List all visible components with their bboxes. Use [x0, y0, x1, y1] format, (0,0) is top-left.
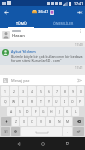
staticText: 0 — [80, 89, 82, 94]
staticText: 3 — [22, 89, 24, 94]
staticText: 1 — [4, 89, 6, 94]
button[interactable]: Q — [1, 97, 9, 106]
button[interactable]: Shift — [1, 117, 11, 126]
staticText: O — [71, 99, 74, 104]
button[interactable]: H — [48, 107, 55, 116]
staticText: Bizimle böyle bir çok kullanıcının bir b… — [11, 54, 83, 63]
staticText: H — [50, 109, 53, 114]
staticText: G — [42, 109, 45, 114]
staticText: K — [66, 109, 69, 114]
button[interactable]: 2 — [10, 86, 18, 96]
button[interactable]: Son uygulamalar — [61, 137, 74, 150]
staticText: 4 — [31, 89, 33, 94]
button[interactable]: Z — [12, 117, 19, 126]
staticText: E — [22, 99, 24, 104]
staticText: R — [31, 99, 34, 104]
button[interactable]: Enter — [73, 127, 84, 136]
staticText: Z — [15, 119, 17, 124]
button[interactable]: R — [28, 97, 36, 106]
staticText: ÖNEMLİLER — [53, 21, 74, 26]
button[interactable]: F — [32, 107, 39, 116]
staticText: V — [40, 119, 43, 124]
staticText: L — [75, 109, 77, 114]
button[interactable]: D — [24, 107, 31, 116]
button[interactable]: 4 — [28, 86, 36, 96]
staticText: A — [10, 109, 13, 114]
button[interactable]: M — [64, 117, 72, 126]
button[interactable]: Aykut Yıldırım — [0, 47, 85, 65]
button[interactable]: O — [69, 97, 76, 106]
staticText: T — [40, 99, 42, 104]
staticText: C — [31, 119, 34, 124]
button[interactable]: A — [7, 107, 15, 116]
button[interactable]: Boşluk — [21, 127, 62, 136]
staticText: 36:41 — [38, 9, 49, 15]
staticText: P — [79, 99, 82, 104]
staticText: X — [23, 119, 25, 124]
button[interactable]: Hasan — [0, 28, 85, 41]
staticText: Q — [4, 99, 7, 104]
button[interactable]: P — [77, 97, 84, 106]
staticText: U — [55, 99, 58, 104]
button[interactable]: C — [28, 117, 36, 126]
staticText: 5 — [40, 89, 42, 94]
button[interactable]: Gönder — [75, 76, 83, 84]
button[interactable]: X — [20, 117, 27, 126]
staticText: S — [19, 109, 21, 114]
button[interactable]: Daha fazla — [77, 28, 83, 34]
staticText: Y — [48, 99, 50, 104]
button[interactable]: Sil — [73, 117, 84, 126]
button[interactable]: Ana ekran — [36, 137, 49, 150]
button[interactable]: I — [61, 97, 68, 106]
button[interactable]: Ek — [2, 77, 9, 84]
button[interactable]: Geri — [0, 6, 12, 18]
button[interactable]: 3 — [19, 86, 27, 96]
button[interactable]: 5 — [37, 86, 44, 96]
button[interactable]: S — [16, 107, 23, 116]
button[interactable]: J — [56, 107, 63, 116]
button[interactable]: Mesaj yaz — [11, 75, 75, 85]
staticText: D — [26, 109, 29, 114]
button[interactable]: TÜMÜ — [0, 18, 42, 28]
staticText: 8 — [64, 89, 66, 94]
staticText: Hasan — [12, 33, 25, 39]
staticText: I — [64, 99, 66, 104]
button[interactable]: T — [37, 97, 44, 106]
button[interactable]: K — [64, 107, 71, 116]
staticText: N — [58, 119, 61, 124]
staticText: W — [12, 99, 16, 104]
staticText: 17:40 — [75, 43, 83, 47]
button[interactable]: 1 — [1, 86, 9, 96]
staticText: . — [67, 129, 68, 134]
button[interactable]: G — [40, 107, 47, 116]
staticText: !#1 — [4, 130, 8, 134]
button[interactable]: 9 — [69, 86, 76, 96]
button[interactable]: Geri — [12, 137, 25, 150]
staticText: Aykut Yıldırım — [11, 49, 36, 54]
staticText: TÜMÜ — [16, 21, 27, 26]
button[interactable]: ÖNEMLİLER — [42, 18, 85, 28]
staticText: F — [35, 109, 37, 114]
staticText: B — [49, 119, 52, 124]
button[interactable]: Semboller — [1, 127, 10, 136]
button[interactable]: E — [19, 97, 27, 106]
button[interactable]: 6 — [45, 86, 52, 96]
button[interactable]: 8 — [61, 86, 68, 96]
button[interactable]: V — [37, 117, 45, 126]
button[interactable]: Y — [45, 97, 52, 106]
staticText: M — [66, 119, 70, 124]
button[interactable]: N — [55, 117, 63, 126]
button[interactable]: B — [46, 117, 54, 126]
button[interactable]: Sessize al — [73, 6, 85, 18]
button[interactable]: 7 — [53, 86, 60, 96]
staticText: 17:41 — [74, 1, 84, 6]
staticText: J — [59, 109, 60, 114]
button[interactable]: W — [10, 97, 18, 106]
button[interactable]: 0 — [77, 86, 84, 96]
staticText: 7 — [56, 89, 58, 94]
staticText: Mesaj yaz — [11, 78, 30, 83]
button[interactable]: Ayarlar — [11, 127, 20, 136]
button[interactable]: L — [72, 107, 79, 116]
button[interactable]: U — [53, 97, 60, 106]
